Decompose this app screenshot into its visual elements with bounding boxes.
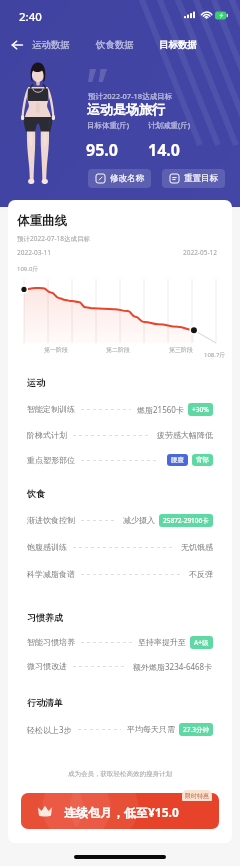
staticText: 体重曲线	[17, 213, 67, 229]
staticText: 第三阶段	[169, 346, 193, 354]
staticText: 目标数据	[159, 39, 197, 51]
button[interactable]: 饮食数据	[92, 36, 137, 54]
button[interactable]: 饱腹感训练	[27, 538, 213, 556]
staticText: 微习惯改进	[27, 661, 67, 671]
staticText: 坚持率提升至	[138, 637, 186, 647]
staticText: 25872-29106卡	[163, 516, 209, 525]
staticText: 27.3分钟	[183, 725, 209, 734]
staticText: 2022-05-12	[183, 248, 217, 257]
staticText: 连续包月，低至¥15.0	[64, 804, 179, 820]
button[interactable]: 重置目标	[162, 169, 225, 188]
staticText: 饱腹感训练	[27, 542, 67, 552]
staticText: 额外燃脂3234-6468卡	[133, 661, 213, 672]
staticText: 修改名称	[110, 173, 144, 184]
button[interactable]: 科学减脂食谱	[27, 565, 213, 583]
staticText: 腰腹	[171, 456, 184, 464]
staticText: 重点塑形部位	[27, 455, 75, 465]
button[interactable]: 修改名称	[88, 169, 151, 188]
staticText: 108.7斤	[204, 351, 226, 359]
staticText: 限时特惠	[185, 792, 209, 800]
staticText: 渐进饮食控制	[27, 515, 75, 525]
staticText: 行动清单	[27, 697, 63, 708]
staticText: 轻松以上3步	[27, 724, 72, 735]
staticText: 饮食数据	[96, 39, 134, 51]
button[interactable]: Back	[6, 34, 28, 56]
staticText: 2:40	[19, 9, 42, 25]
staticText: 14.0	[148, 139, 180, 161]
button[interactable]: 阶梯式计划	[27, 426, 213, 444]
staticText: 预计2022-07-18达成目标	[88, 91, 173, 101]
staticText: 减少摄入	[123, 515, 155, 525]
button[interactable]: 连续包月，低至¥15.0	[21, 793, 219, 829]
staticText: 不反弹	[189, 569, 213, 579]
staticText: 智能习惯培养	[27, 637, 75, 647]
staticText: 目标体重(斤)	[87, 120, 129, 130]
button[interactable]: 运动数据	[28, 36, 73, 54]
staticText: 饮食	[27, 488, 45, 499]
button[interactable]: 轻松以上3步	[27, 720, 213, 738]
button[interactable]: 微习惯改进	[27, 657, 213, 675]
button[interactable]: 目标数据	[155, 36, 200, 54]
button[interactable]: 智能习惯培养	[27, 633, 213, 651]
staticText: 平均每天只需	[127, 724, 175, 734]
staticText: 背部	[196, 456, 209, 464]
staticText: 2022-03-11	[17, 248, 51, 257]
staticText: 计划减重(斤)	[148, 120, 190, 130]
staticText: 阶梯式计划	[27, 430, 67, 440]
staticText: 运动数据	[32, 39, 70, 51]
staticText: 95.0	[86, 139, 118, 161]
staticText: 无饥饿感	[181, 542, 213, 552]
staticText: 重置目标	[184, 173, 218, 184]
staticText: 第一阶段	[44, 346, 68, 354]
staticText: 燃脂21560卡	[137, 404, 184, 415]
staticText: 疲劳感大幅降低	[157, 430, 213, 440]
staticText: 智能定制训练	[27, 404, 75, 414]
staticText: 科学减脂食谱	[27, 569, 75, 579]
staticText: 第二阶段	[106, 346, 130, 354]
staticText: 109.0斤	[17, 265, 39, 273]
button[interactable]: 重点塑形部位	[27, 451, 213, 469]
staticText: A+级	[194, 638, 209, 647]
staticText: 成为会员，获取轻松高效的瘦身计划	[8, 770, 232, 778]
staticText: 运动	[27, 377, 45, 388]
staticText: 运动是场旅行	[87, 101, 165, 117]
staticText: +30%	[192, 405, 209, 414]
staticText: 预计2022-07-18达成目标	[17, 234, 90, 243]
button[interactable]: 渐进饮食控制	[27, 511, 213, 529]
button[interactable]: 智能定制训练	[27, 400, 213, 418]
staticText: 习惯养成	[27, 612, 63, 623]
